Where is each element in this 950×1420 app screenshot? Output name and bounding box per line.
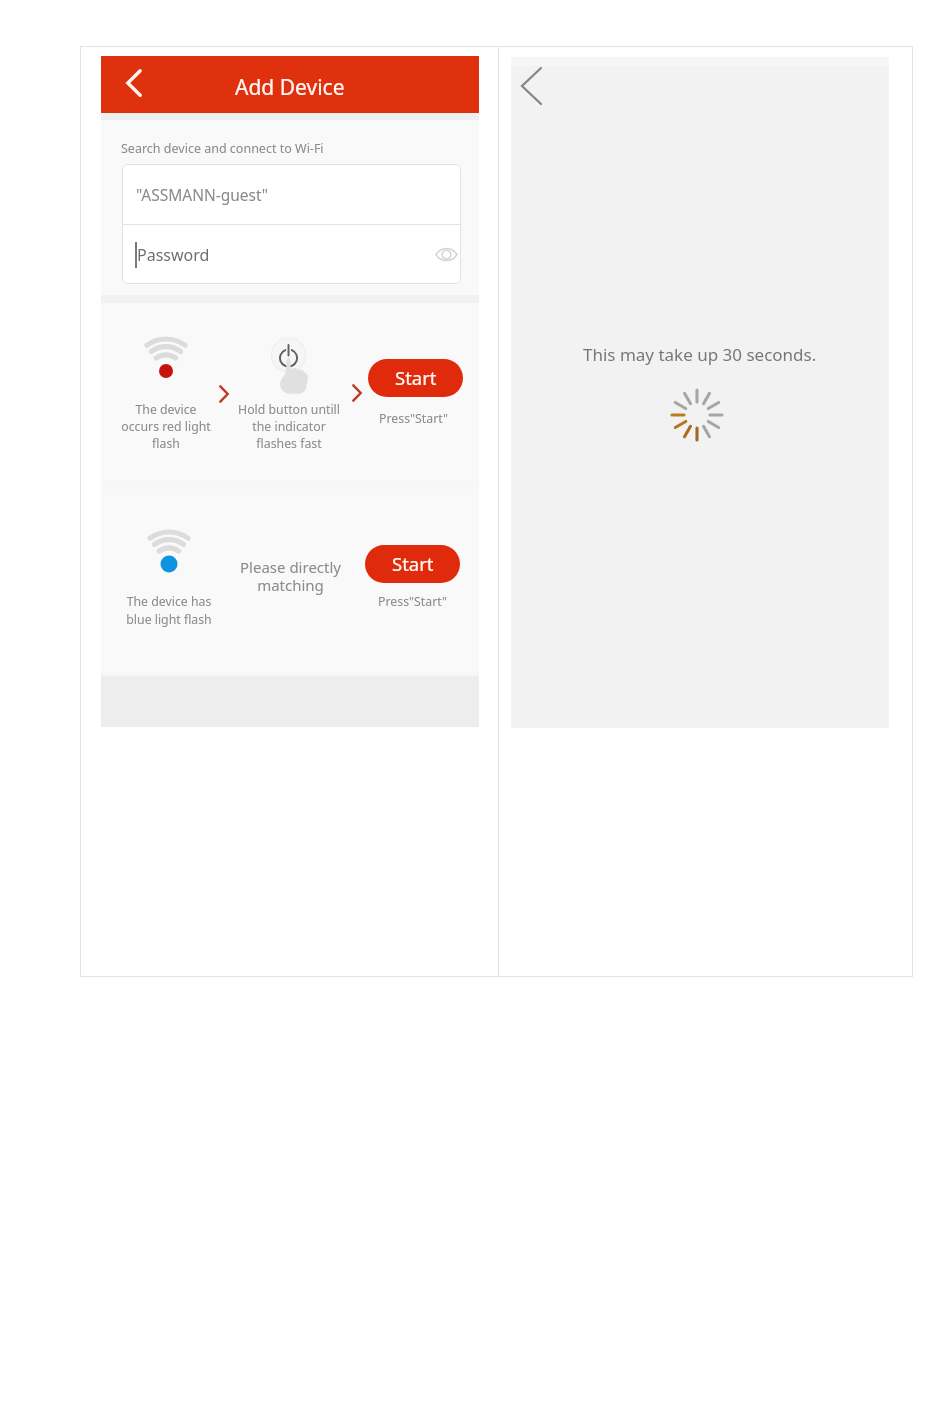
staticText: The device has blue light flash [126, 593, 212, 628]
staticText: "ASSMANN-guest" [136, 184, 269, 205]
staticText: The device occurs red light flash [121, 401, 211, 452]
staticText: Start [392, 551, 434, 576]
staticText: Please directly matching [240, 557, 341, 596]
button[interactable]: Password [122, 225, 461, 284]
staticText: Search device and connect to Wi-Fi [121, 140, 324, 157]
button[interactable]: Show password [432, 237, 460, 271]
button[interactable]: Back [112, 63, 156, 103]
button[interactable]: Add Device [101, 56, 479, 113]
button[interactable]: "ASSMANN-guest" [122, 164, 461, 224]
button[interactable]: Start [365, 545, 460, 583]
staticText: This may take up 30 seconds. [583, 343, 817, 366]
staticText: Press"Start" [378, 593, 447, 610]
staticText: Hold button untill the indicator flashes… [238, 401, 340, 452]
staticText: Press"Start" [379, 410, 448, 427]
button[interactable]: Back [507, 60, 555, 112]
staticText: Password [137, 244, 210, 266]
button[interactable]: Start [368, 359, 463, 397]
staticText: Add Device [235, 73, 345, 102]
staticText: Start [395, 365, 437, 390]
